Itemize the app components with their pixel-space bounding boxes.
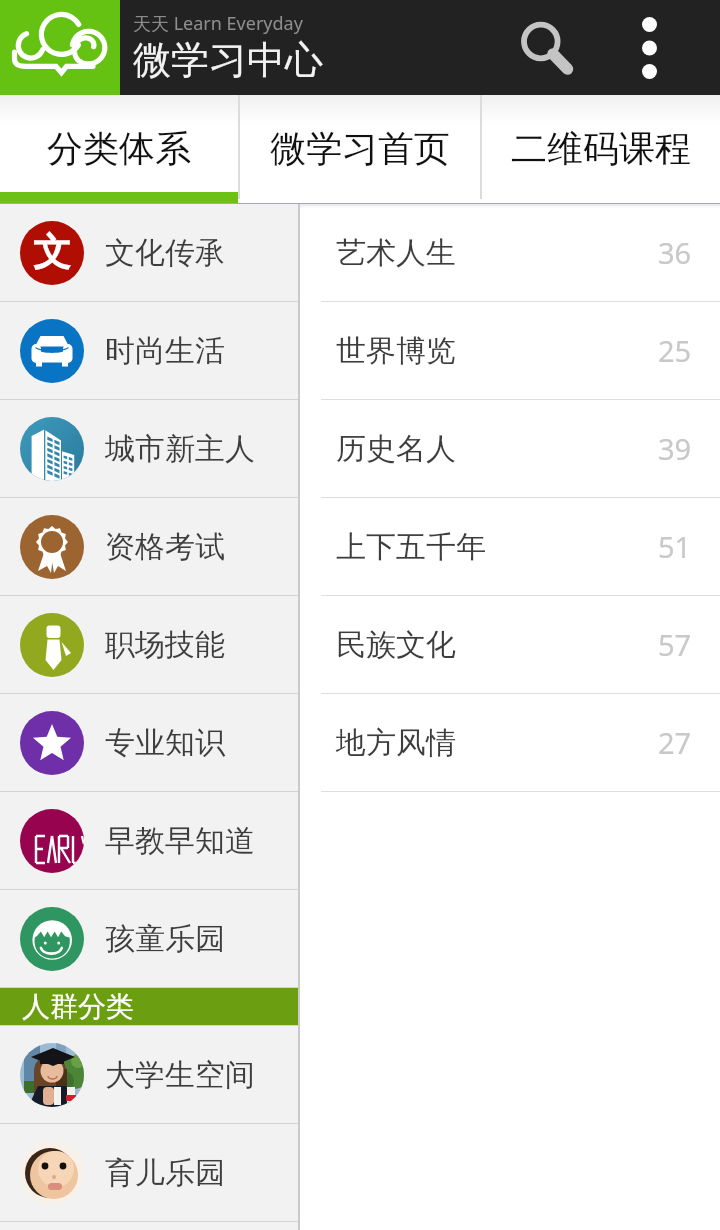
staticText: 文化传承 [105, 234, 225, 272]
button[interactable]: 文 [0, 204, 298, 301]
button[interactable]: 民族文化 [300, 596, 720, 693]
button[interactable]: 职场技能 [0, 596, 298, 693]
staticText: 早教早知道 [105, 822, 255, 860]
staticText: 世界博览 [336, 332, 456, 370]
staticText: 36 [658, 233, 692, 272]
button[interactable]: 分类体系 [0, 95, 238, 203]
button[interactable]: Logo [0, 0, 120, 95]
button[interactable]: 微学习首页 [240, 95, 480, 203]
staticText: 微学习中心 [133, 36, 323, 84]
button[interactable]: 专业知识 [0, 694, 298, 791]
button[interactable]: 艺术人生 [300, 204, 720, 301]
button[interactable]: 早教早知道 [0, 792, 298, 889]
staticText: 大学生空间 [105, 1056, 255, 1094]
staticText: 专业知识 [105, 724, 225, 762]
staticText: 分类体系 [47, 126, 191, 171]
button[interactable]: 时尚生活 [0, 302, 298, 399]
staticText: 地方风情 [336, 724, 456, 762]
staticText: 27 [658, 723, 692, 762]
staticText: 职场技能 [105, 626, 225, 664]
staticText: 人群分类 [22, 989, 134, 1024]
staticText: 上下五千年 [336, 528, 486, 566]
staticText: 艺术人生 [336, 234, 456, 272]
staticText: 文 [33, 228, 71, 276]
staticText: 57 [658, 625, 692, 664]
button[interactable]: 历史名人 [300, 400, 720, 497]
button[interactable]: 城市新主人 [0, 400, 298, 497]
button[interactable]: Search [498, 0, 596, 95]
staticText: 育儿乐园 [105, 1154, 225, 1192]
staticText: 天天 Learn Everyday [133, 11, 303, 36]
staticText: 民族文化 [336, 626, 456, 664]
staticText: 历史名人 [336, 430, 456, 468]
button[interactable]: 上下五千年 [300, 498, 720, 595]
staticText: 微学习首页 [270, 126, 450, 171]
button[interactable]: 世界博览 [300, 302, 720, 399]
button[interactable]: 育儿乐园 [0, 1124, 298, 1221]
staticText: 25 [658, 331, 692, 370]
staticText: 39 [658, 429, 692, 468]
button[interactable]: 大学生空间 [0, 1026, 298, 1123]
staticText: 城市新主人 [105, 430, 255, 468]
button[interactable]: More options [578, 0, 720, 95]
staticText: 孩童乐园 [105, 920, 225, 958]
button[interactable]: 资格考试 [0, 498, 298, 595]
button[interactable]: 孩童乐园 [0, 890, 298, 987]
staticText: 51 [658, 527, 692, 566]
button[interactable]: 二维码课程 [482, 95, 720, 203]
button[interactable]: 地方风情 [300, 694, 720, 791]
staticText: 资格考试 [105, 528, 225, 566]
staticText: 时尚生活 [105, 332, 225, 370]
staticText: 二维码课程 [511, 126, 691, 171]
